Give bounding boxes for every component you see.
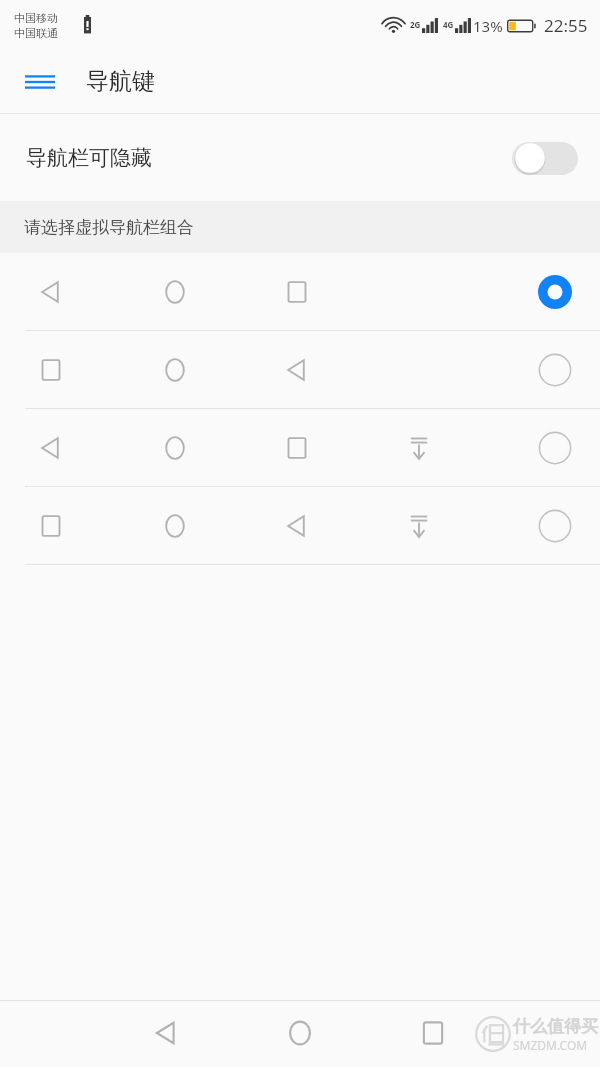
staticText: 22:55 xyxy=(544,14,588,37)
staticText: 中国联通 xyxy=(14,26,58,40)
button[interactable]: 导航栏可隐藏 xyxy=(0,114,600,201)
staticText: 中国移动 xyxy=(14,11,58,25)
button[interactable]: Back xyxy=(134,1001,198,1065)
button[interactable]: Navigation bar hideable toggle xyxy=(512,140,578,176)
button[interactable]: Home xyxy=(268,1001,332,1065)
button[interactable]: Menu xyxy=(16,58,64,106)
button[interactable]: Navigation key layout option 3 xyxy=(0,409,600,487)
staticText: SMZDM.COM xyxy=(513,1037,588,1053)
staticText: 导航栏可隐藏 xyxy=(26,145,152,171)
staticText: 什么值得买 xyxy=(513,1016,598,1037)
staticText: 2G xyxy=(410,19,421,30)
staticText: 请选择虚拟导航栏组合 xyxy=(24,217,194,238)
staticText: 13% xyxy=(473,16,503,36)
button[interactable]: Recent apps xyxy=(401,1001,465,1065)
staticText: 导航键 xyxy=(86,67,155,96)
button[interactable]: Navigation key layout option 2 xyxy=(0,331,600,409)
staticText: 4G xyxy=(443,19,454,30)
button[interactable]: Navigation key layout option 4 xyxy=(0,487,600,565)
button[interactable]: Navigation key layout option 1 xyxy=(0,253,600,331)
